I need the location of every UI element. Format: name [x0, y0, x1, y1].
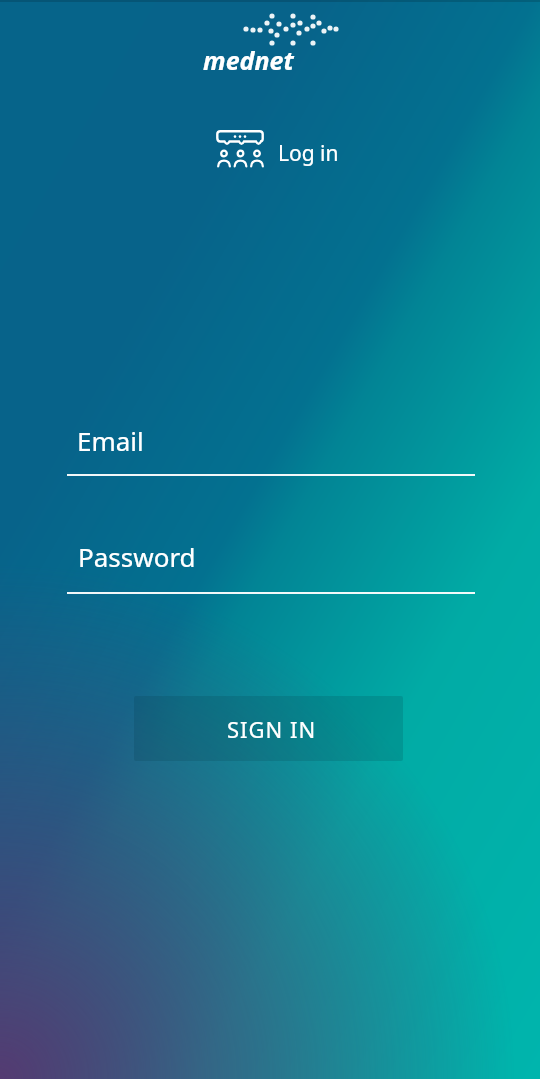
- staticText: Log in: [278, 139, 339, 168]
- staticText: Password: [78, 539, 196, 574]
- staticText: SIGN IN: [227, 714, 317, 744]
- button[interactable]: SIGN IN: [134, 696, 403, 761]
- button[interactable]: Email: [67, 416, 475, 476]
- staticText: Email: [77, 423, 144, 458]
- button[interactable]: Password: [67, 534, 475, 594]
- staticText: mednet: [203, 43, 294, 77]
